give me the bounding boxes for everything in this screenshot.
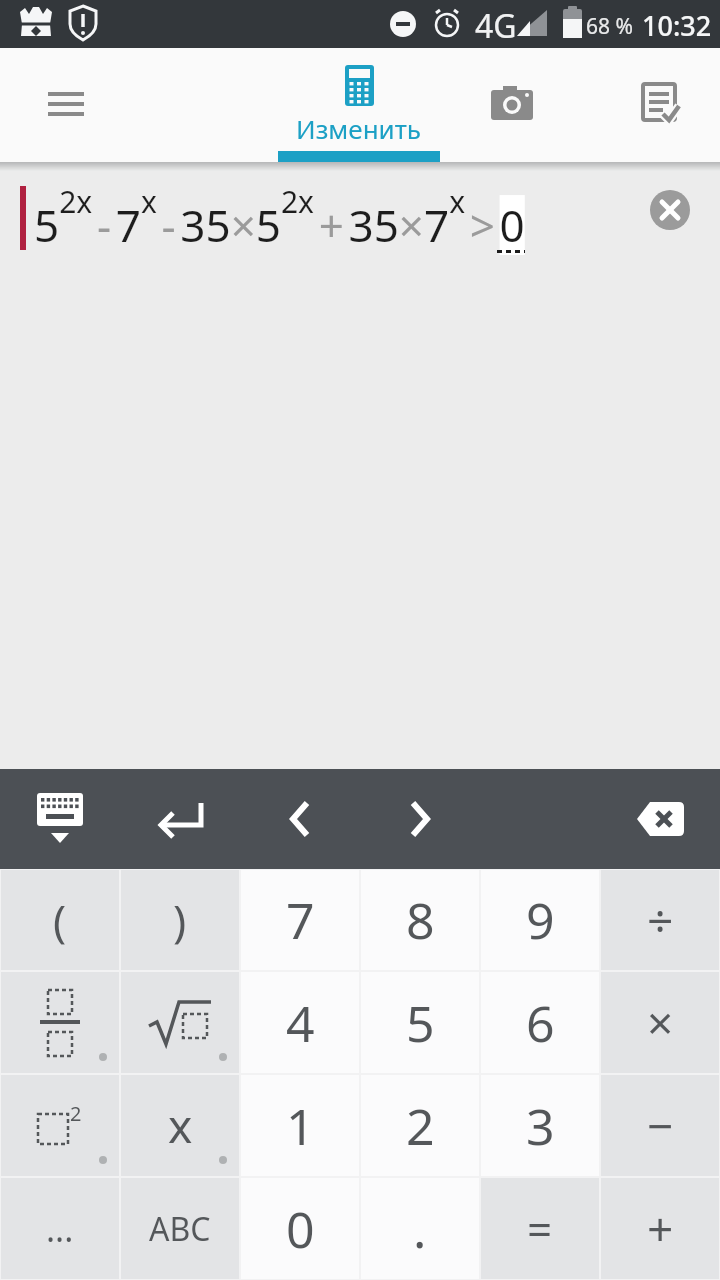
button[interactable]: x <box>121 1075 239 1176</box>
staticText: 3 <box>526 1092 555 1160</box>
button[interactable]: 2 <box>1 1075 119 1176</box>
button[interactable] <box>240 769 360 869</box>
button[interactable] <box>624 67 696 139</box>
staticText: ( <box>53 890 67 950</box>
button[interactable]: + <box>601 1178 719 1279</box>
button[interactable]: ... <box>1 1178 119 1279</box>
staticText: 2 <box>70 1100 82 1127</box>
button[interactable] <box>476 67 548 139</box>
staticText: ÷ <box>647 889 674 952</box>
button[interactable]: × <box>601 972 719 1073</box>
button[interactable]: 7 <box>241 870 359 970</box>
staticText: 8 <box>406 886 435 954</box>
button[interactable] <box>121 972 239 1073</box>
staticText: ) <box>173 890 187 950</box>
button[interactable]: 8 <box>361 870 479 970</box>
staticText: ... <box>46 1206 74 1252</box>
staticText: 2 <box>406 1092 435 1160</box>
button[interactable] <box>1 972 119 1073</box>
button[interactable]: ) <box>121 870 239 970</box>
staticText: = <box>527 1199 553 1259</box>
button[interactable]: 0 <box>241 1178 359 1279</box>
button[interactable]: ÷ <box>601 870 719 970</box>
button[interactable]: 5 <box>361 972 479 1073</box>
button[interactable] <box>30 68 102 140</box>
button[interactable] <box>360 769 480 869</box>
staticText: 0 <box>286 1195 315 1263</box>
staticText: 5 <box>406 989 435 1057</box>
staticText: . <box>413 1195 427 1263</box>
button[interactable]: 1 <box>241 1075 359 1176</box>
staticText: × <box>647 991 674 1054</box>
button[interactable]: 2 <box>361 1075 479 1176</box>
button[interactable]: Изменить <box>278 48 440 162</box>
staticText: 4 <box>286 989 315 1057</box>
button[interactable]: ABC <box>121 1178 239 1279</box>
button[interactable]: ( <box>1 870 119 970</box>
staticText: ABC <box>149 1207 211 1251</box>
button[interactable]: 3 <box>481 1075 599 1176</box>
staticText: 68 % <box>586 12 633 41</box>
staticText: 52x - 7x - 35×52x + 35×7x > 0 <box>34 181 525 255</box>
staticText: 9 <box>526 886 555 954</box>
button[interactable]: 4 <box>241 972 359 1073</box>
staticText: 1 <box>286 1092 315 1160</box>
staticText: − <box>647 1094 674 1157</box>
button[interactable] <box>650 190 690 230</box>
staticText: Изменить <box>296 111 422 146</box>
button[interactable] <box>0 769 120 869</box>
button[interactable]: − <box>601 1075 719 1176</box>
staticText: x <box>168 1094 193 1157</box>
staticText: + <box>647 1197 674 1260</box>
button[interactable]: 6 <box>481 972 599 1073</box>
button[interactable]: . <box>361 1178 479 1279</box>
staticText: 6 <box>526 989 555 1057</box>
button[interactable] <box>120 769 240 869</box>
button[interactable] <box>600 769 720 869</box>
staticText: 7 <box>286 886 315 954</box>
button[interactable]: 9 <box>481 870 599 970</box>
button[interactable]: = <box>481 1178 599 1279</box>
staticText: 10:32 <box>642 7 712 44</box>
staticText: 4G <box>475 4 517 48</box>
